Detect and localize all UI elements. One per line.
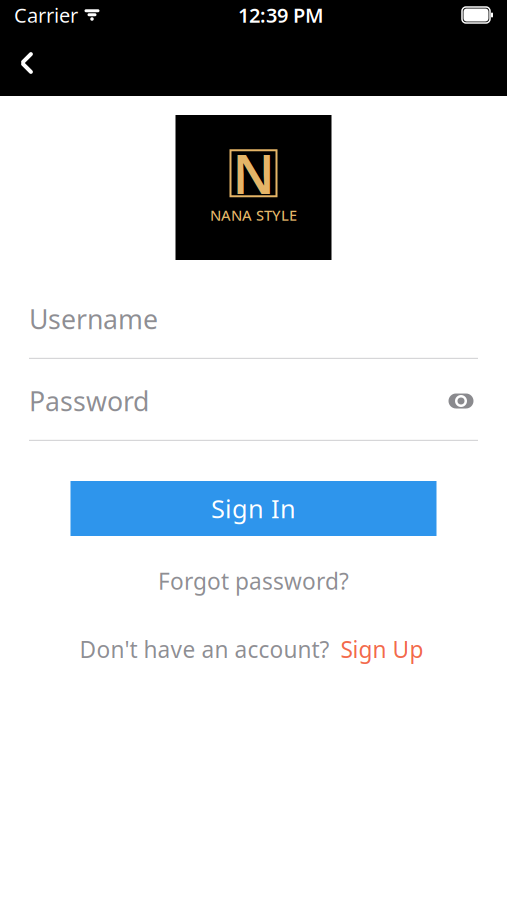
button[interactable]: Back (0, 31, 54, 95)
staticText: Don't have an account? (79, 634, 329, 664)
button[interactable]: Sign Up (336, 630, 427, 668)
staticText: 12:39 PM (238, 2, 324, 28)
staticText: Password (29, 383, 149, 419)
staticText: Sign Up (340, 634, 423, 664)
staticText: Sign In (211, 492, 296, 525)
button[interactable]: Sign In (70, 481, 436, 536)
staticText: NANA STYLE (210, 205, 297, 225)
staticText: N (232, 138, 274, 209)
staticText: Forgot password? (158, 566, 349, 596)
button[interactable]: Forgot password? (142, 558, 365, 604)
staticText: Username (29, 301, 158, 337)
staticText: Carrier (14, 2, 78, 28)
button[interactable]: Show password (444, 386, 478, 416)
